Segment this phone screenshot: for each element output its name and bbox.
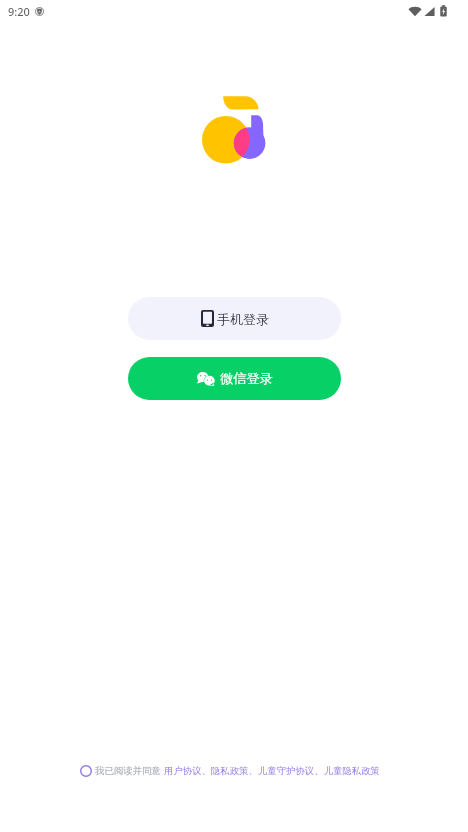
staticText: 手机登录 [217, 311, 269, 327]
button[interactable]: Agree to terms [79, 764, 380, 777]
staticText: 我已阅读并同意 [95, 765, 161, 777]
button[interactable]: 手机登录 [128, 297, 341, 340]
staticText: 用户协议、隐私政策、儿童守护协议、儿童隐私政策 [164, 765, 380, 777]
staticText: 9:20 [8, 4, 30, 19]
button[interactable]: 微信登录 [128, 357, 341, 400]
other: Agree to terms [79, 764, 92, 777]
staticText: 微信登录 [220, 370, 273, 387]
